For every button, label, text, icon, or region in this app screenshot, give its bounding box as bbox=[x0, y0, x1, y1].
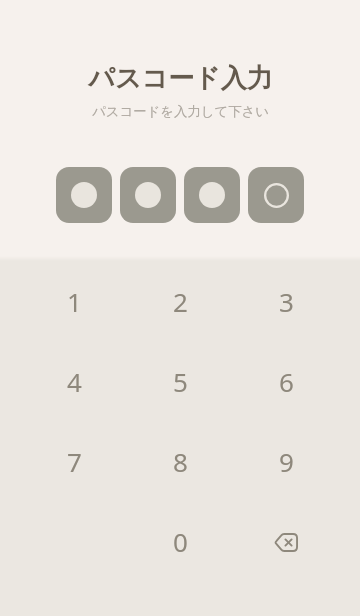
staticText: 4 bbox=[67, 364, 82, 399]
button[interactable]: 3 bbox=[233, 261, 339, 341]
button[interactable] bbox=[120, 167, 176, 223]
staticText: 2 bbox=[173, 284, 188, 319]
button[interactable]: 4 bbox=[21, 341, 127, 421]
button[interactable]: 0 bbox=[127, 501, 233, 581]
button[interactable]: 6 bbox=[233, 341, 339, 421]
button[interactable] bbox=[184, 167, 240, 223]
button[interactable]: 7 bbox=[21, 421, 127, 501]
button[interactable]: 8 bbox=[127, 421, 233, 501]
button[interactable] bbox=[56, 167, 112, 223]
button[interactable]: Delete bbox=[233, 501, 339, 581]
staticText: 3 bbox=[279, 284, 294, 319]
staticText: 9 bbox=[279, 444, 294, 479]
button[interactable]: 1 bbox=[21, 261, 127, 341]
staticText: パスコードを入力して下さい bbox=[92, 103, 269, 120]
staticText: パスコード入力 bbox=[88, 62, 273, 95]
button[interactable]: 9 bbox=[233, 421, 339, 501]
staticText: 6 bbox=[279, 364, 294, 399]
staticText: 8 bbox=[173, 444, 188, 479]
staticText: 0 bbox=[173, 524, 188, 559]
button[interactable]: 2 bbox=[127, 261, 233, 341]
button[interactable]: 5 bbox=[127, 341, 233, 421]
staticText: 1 bbox=[67, 284, 82, 319]
button[interactable] bbox=[248, 167, 304, 223]
staticText: 5 bbox=[173, 364, 188, 399]
staticText: 7 bbox=[67, 444, 82, 479]
